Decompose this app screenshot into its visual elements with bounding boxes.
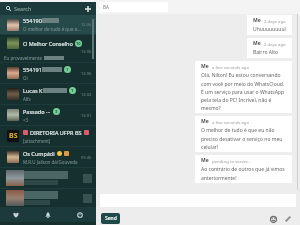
button[interactable]: BA bbox=[100, 2, 168, 12]
staticText: <3 bbox=[23, 117, 29, 123]
staticText: 12:06 bbox=[81, 71, 92, 76]
button[interactable]: Notifications bbox=[32, 207, 64, 222]
staticText: a few seconds ago bbox=[212, 119, 250, 125]
staticText: Me bbox=[201, 157, 209, 164]
staticText: Me bbox=[253, 17, 261, 24]
staticText: O melhor de tudo é que eu não preciso de… bbox=[201, 127, 286, 150]
staticText: 10 bbox=[76, 41, 81, 46]
button[interactable]: Send bbox=[101, 213, 120, 224]
staticText: BS bbox=[9, 131, 18, 141]
staticText: Me bbox=[201, 118, 209, 125]
staticText: M.R.U Jailson dá/Gouveda bbox=[23, 159, 78, 165]
staticText: Olá, Nilton! Eu estou conversando com vo… bbox=[201, 72, 286, 111]
staticText: Eu provavelmente bbox=[4, 55, 43, 61]
button[interactable]: Me bbox=[247, 38, 292, 58]
button[interactable]: Passado ··· bbox=[0, 105, 96, 125]
button[interactable] bbox=[0, 189, 96, 207]
staticText: Uhuuuuuuuul bbox=[253, 26, 286, 33]
staticText: Send bbox=[105, 215, 117, 222]
staticText: Lucas K bbox=[23, 87, 43, 94]
staticText: Passado ··· bbox=[23, 108, 51, 115]
staticText: Search bbox=[14, 5, 32, 12]
button[interactable] bbox=[0, 168, 96, 188]
staticText: pending to server... bbox=[212, 158, 251, 164]
staticText: 2 days ago bbox=[264, 18, 286, 24]
button[interactable]: New chat bbox=[83, 4, 92, 13]
staticText: Bairro Alto bbox=[253, 49, 279, 56]
staticText: O melhor de tudo é que e... bbox=[23, 26, 81, 32]
staticText: 12:01 bbox=[81, 113, 92, 118]
button[interactable]: BS bbox=[0, 126, 96, 146]
staticText: Me bbox=[253, 40, 261, 47]
staticText: 3 bbox=[55, 109, 58, 114]
button[interactable]: Me bbox=[195, 155, 292, 183]
staticText: [attachment] bbox=[23, 138, 51, 144]
button[interactable]: Lucas K bbox=[0, 84, 96, 104]
staticText: 1 bbox=[66, 67, 69, 72]
staticText: 554190 bbox=[23, 17, 42, 24]
button[interactable]: Os Cumpádi bbox=[0, 147, 96, 167]
staticText: DIRETORIA UFPR BS bbox=[30, 129, 82, 136]
button[interactable]: Me bbox=[195, 61, 292, 113]
button[interactable]: Me bbox=[247, 15, 292, 35]
staticText: 12:06 bbox=[81, 22, 92, 27]
button[interactable]: Me bbox=[195, 116, 292, 152]
staticText: 1 bbox=[71, 88, 74, 93]
staticText: 12:06 bbox=[81, 49, 92, 54]
staticText: 2 days ago bbox=[264, 41, 286, 47]
button[interactable]: Search bbox=[0, 2, 96, 15]
button[interactable]: Emoji bbox=[268, 214, 278, 224]
staticText: 554191 bbox=[23, 66, 42, 73]
staticText: Oi bbox=[23, 75, 28, 81]
staticText: BA bbox=[103, 4, 109, 10]
button[interactable]: Favorites bbox=[0, 207, 32, 222]
staticText: a few seconds ago bbox=[212, 64, 250, 70]
button[interactable]: O Melhor Conselho bbox=[0, 35, 96, 62]
staticText: 12:02 bbox=[81, 92, 92, 97]
button[interactable]: 554191 bbox=[0, 63, 96, 83]
button[interactable]: Status bbox=[64, 207, 96, 222]
staticText: Os Cumpádi bbox=[23, 150, 55, 157]
staticText: Ao contrário de outros que já vimos ante… bbox=[201, 166, 286, 181]
button[interactable]: Attach file bbox=[283, 214, 293, 224]
staticText: Me bbox=[201, 63, 209, 70]
button[interactable]: 554190 bbox=[0, 15, 96, 34]
staticText: Alfs bbox=[23, 96, 31, 102]
staticText: O Melhor Conselho bbox=[23, 40, 73, 47]
staticText: 09:46 bbox=[81, 155, 92, 160]
